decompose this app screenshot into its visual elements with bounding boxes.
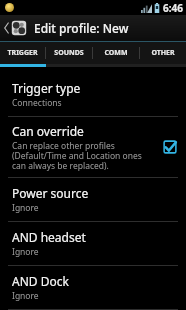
staticText: Ignore — [12, 202, 39, 214]
button[interactable]: SOUNDS — [46, 42, 92, 64]
staticText: AND Dock — [12, 273, 69, 289]
staticText: SOUNDS — [54, 48, 84, 58]
staticText: TRIGGER — [7, 48, 38, 58]
button[interactable]: Can override — [0, 117, 186, 177]
staticText: Power source — [12, 185, 89, 201]
button[interactable]: COMM — [93, 42, 139, 64]
button[interactable]: AND Dock — [0, 266, 186, 309]
staticText: Edit profile: New — [34, 20, 129, 36]
staticText: 6:46 — [163, 1, 183, 15]
staticText: Trigger type — [12, 80, 81, 96]
button[interactable]: Trigger type — [0, 73, 186, 116]
staticText: AND headset — [12, 229, 86, 245]
button[interactable]: OTHER — [140, 42, 186, 64]
button[interactable]: TRIGGER — [0, 42, 45, 64]
button[interactable]: Can override checkbox, checked — [162, 139, 178, 155]
staticText: OTHER — [151, 48, 175, 58]
staticText: Can override — [12, 123, 84, 139]
staticText: Ignore — [12, 246, 39, 258]
button[interactable]: Navigate up — [2, 20, 29, 36]
staticText: COMM — [104, 48, 128, 58]
staticText: Ignore — [12, 290, 39, 302]
staticText: Connections — [12, 97, 62, 109]
staticText: Can replace other profiles (Default/Time… — [12, 140, 142, 171]
button[interactable]: AND headset — [0, 222, 186, 265]
button[interactable]: Power source — [0, 178, 186, 221]
